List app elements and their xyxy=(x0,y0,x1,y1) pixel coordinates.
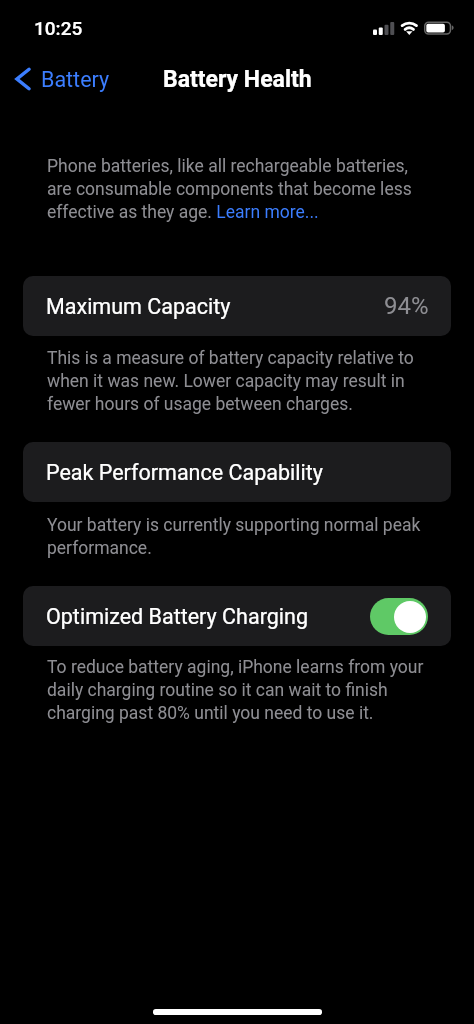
staticText: Optimized Battery Charging xyxy=(46,604,308,629)
button[interactable]: Maximum Capacity xyxy=(23,276,451,336)
other: Cellular signal xyxy=(373,21,395,35)
other: Wi-Fi xyxy=(399,19,420,36)
staticText: 10:25 xyxy=(34,17,83,39)
staticText: 94% xyxy=(384,292,429,320)
staticText: Phone batteries, like all rechargeable b… xyxy=(47,156,412,222)
button[interactable]: Back to Battery xyxy=(11,62,118,96)
staticText: Battery xyxy=(41,67,110,92)
staticText: Maximum Capacity xyxy=(46,294,231,319)
button[interactable]: Optimized Battery Charging xyxy=(23,586,451,646)
staticText: This is a measure of battery capacity re… xyxy=(47,348,414,414)
button[interactable]: Optimized Battery Charging, on xyxy=(370,598,428,635)
staticText: Battery Health xyxy=(163,66,312,93)
staticText: Your battery is currently supporting nor… xyxy=(47,515,421,558)
staticText: To reduce battery aging, iPhone learns f… xyxy=(47,657,424,723)
staticText: Peak Performance Capability xyxy=(46,460,323,485)
other: Battery xyxy=(424,21,455,35)
button[interactable]: Peak Performance Capability xyxy=(23,442,451,502)
